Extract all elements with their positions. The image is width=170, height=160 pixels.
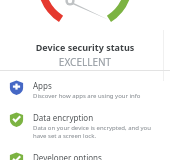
- other: Secure: [9, 112, 24, 127]
- staticText: Device security status: [0, 41, 170, 53]
- staticText: Apps: [33, 80, 52, 91]
- button[interactable]: Secure: [0, 146, 170, 160]
- staticText: Developer options: [33, 152, 102, 160]
- button[interactable]: Secure: [0, 106, 170, 146]
- staticText: Discover how apps are using your info: [33, 92, 141, 100]
- staticText: EXCELLENT: [0, 55, 170, 69]
- staticText: Data encryption: [33, 112, 94, 123]
- staticText: Data on your device is encrypted, and yo…: [33, 124, 160, 140]
- other: Apps: [9, 80, 24, 95]
- button[interactable]: Apps: [0, 74, 170, 106]
- other: Secure: [9, 152, 24, 160]
